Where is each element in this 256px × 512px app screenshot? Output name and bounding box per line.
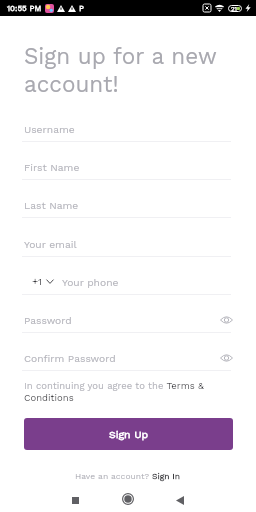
staticText: Confirm Password — [24, 352, 116, 364]
staticText: Password — [24, 314, 72, 326]
staticText: 10:55 PM — [7, 4, 42, 13]
staticText: Username — [24, 123, 75, 135]
staticText: Have an account? — [75, 471, 152, 481]
button[interactable]: Show password — [216, 348, 236, 368]
staticText: P — [79, 4, 84, 13]
staticText: First Name — [24, 161, 80, 173]
button[interactable]: Recent apps — [63, 488, 87, 512]
button[interactable]: Show password — [216, 310, 236, 330]
staticText: Last Name — [24, 199, 79, 211]
staticText: In continuing you agree to the Terms & C… — [24, 380, 233, 403]
button[interactable] — [24, 240, 233, 256]
button[interactable] — [24, 278, 233, 294]
staticText: 21 — [231, 5, 237, 12]
button[interactable]: Back — [168, 488, 192, 512]
button[interactable] — [24, 316, 233, 332]
button[interactable]: Home — [116, 487, 140, 511]
staticText: Sign up for a new account! — [24, 43, 233, 98]
button[interactable] — [24, 354, 233, 370]
staticText: Your email — [24, 238, 77, 250]
button[interactable]: Sign In — [152, 471, 181, 481]
button[interactable]: +1 — [32, 275, 54, 287]
button[interactable] — [24, 163, 233, 179]
button[interactable] — [24, 125, 233, 141]
button[interactable] — [24, 201, 233, 217]
staticText: +1 — [32, 275, 43, 287]
staticText: Sign Up — [109, 428, 149, 440]
button[interactable]: Sign Up — [24, 418, 233, 450]
staticText: Your phone — [62, 276, 119, 288]
